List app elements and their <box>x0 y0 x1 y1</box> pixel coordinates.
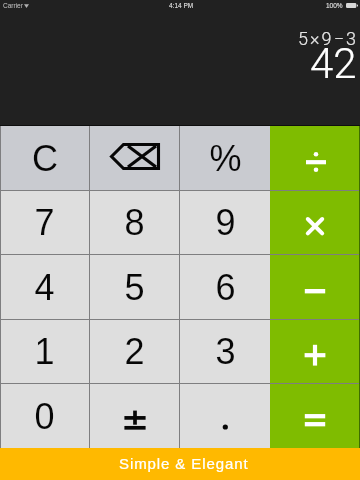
button[interactable]: 3 <box>180 319 270 383</box>
staticText: 9 <box>215 202 236 242</box>
staticText: % <box>209 138 242 178</box>
staticText: 8 <box>124 202 145 242</box>
button[interactable]: Subtract <box>270 255 360 319</box>
staticText: 2 <box>124 331 145 371</box>
button[interactable]: Multiply <box>270 190 360 254</box>
button[interactable]: Decimal point <box>180 384 270 448</box>
staticText: Simple & Elegant <box>119 455 249 472</box>
staticText: 0 <box>34 396 55 436</box>
button[interactable]: Divide <box>270 126 360 190</box>
button[interactable]: 5 <box>90 255 179 319</box>
staticText: 100% <box>326 2 343 9</box>
button[interactable]: 6 <box>180 255 270 319</box>
button[interactable]: Toggle sign <box>90 384 179 448</box>
button[interactable]: Add <box>270 319 360 383</box>
staticText: 5×9−3 <box>298 28 359 49</box>
button[interactable]: Clear <box>90 126 179 190</box>
button[interactable]: C <box>0 126 89 190</box>
staticText: 42 <box>310 39 357 88</box>
staticText: 4:14 PM <box>169 2 194 9</box>
button[interactable]: Simple & Elegant <box>0 448 360 480</box>
button[interactable]: Equals <box>270 384 360 448</box>
staticText: 3 <box>215 331 236 371</box>
button[interactable]: 0 <box>0 384 89 448</box>
button[interactable]: 8 <box>90 190 179 254</box>
button[interactable]: 1 <box>0 319 89 383</box>
staticText: C <box>32 138 58 178</box>
button[interactable]: % <box>180 126 270 190</box>
staticText: 6 <box>215 267 236 307</box>
staticText: 7 <box>34 202 55 242</box>
staticText: 5 <box>124 267 145 307</box>
button[interactable]: 9 <box>180 190 270 254</box>
button[interactable]: 7 <box>0 190 89 254</box>
staticText: 1 <box>34 331 55 371</box>
staticText: Carrier <box>3 2 23 9</box>
button[interactable]: 4 <box>0 255 89 319</box>
button[interactable]: 2 <box>90 319 179 383</box>
staticText: 4 <box>34 267 55 307</box>
